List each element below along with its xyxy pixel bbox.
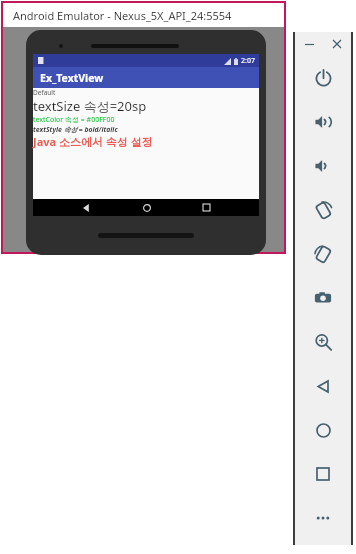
button[interactable]: Home: [295, 408, 351, 452]
button[interactable]: Volume up: [295, 100, 351, 144]
button[interactable]: Take screenshot: [295, 276, 351, 320]
staticText: Java 소스에서 속성 설정: [33, 134, 153, 149]
button[interactable]: Minimize: [299, 34, 319, 54]
button[interactable]: Zoom: [295, 320, 351, 364]
staticText: textStyle 속성 = bold/italic: [33, 125, 118, 134]
button[interactable]: Rotate right: [295, 232, 351, 276]
staticText: textColor 속성 = #00FF00: [33, 115, 115, 125]
staticText: Ex_TextView: [40, 71, 104, 85]
button[interactable]: Back: [295, 364, 351, 408]
staticText: textSize 속성=20sp: [33, 97, 147, 115]
button[interactable]: Volume down: [295, 144, 351, 188]
staticText: Android Emulator - Nexus_5X_API_24:5554: [13, 8, 232, 23]
button[interactable]: Home: [138, 199, 155, 216]
staticText: 2:07: [241, 56, 255, 66]
button[interactable]: Rotate left: [295, 188, 351, 232]
button[interactable]: Recent apps: [295, 452, 351, 496]
button[interactable]: Back: [77, 199, 94, 216]
button[interactable]: More options: [295, 496, 351, 540]
button[interactable]: Recent apps: [198, 199, 215, 216]
button[interactable]: Ex_TextView: [33, 67, 259, 88]
staticText: Default: [33, 88, 56, 97]
button[interactable]: Close: [327, 34, 347, 54]
button[interactable]: Power: [295, 56, 351, 100]
